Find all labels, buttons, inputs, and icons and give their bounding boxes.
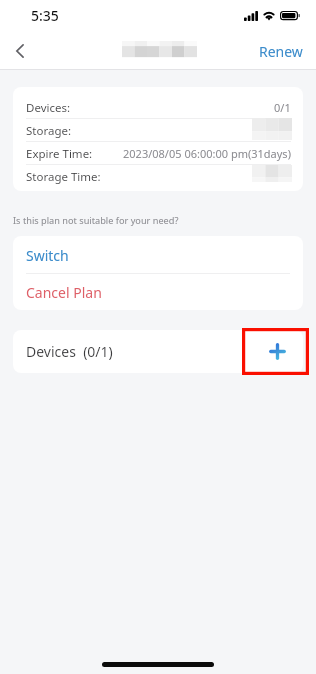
button[interactable]: Cancel Plan (13, 274, 303, 310)
staticText: Storage: (26, 123, 72, 139)
staticText: 5:35 (31, 6, 59, 25)
staticText: Storage Time: (26, 169, 101, 185)
button[interactable]: Back (0, 32, 40, 69)
staticText: Devices: (26, 100, 71, 116)
staticText: Expire Time: (26, 146, 93, 162)
staticText: 2023/08/05 06:00:00 pm(31days) (123, 146, 291, 161)
staticText: Switch (26, 246, 69, 265)
staticText: Cancel Plan (26, 283, 102, 302)
staticText: 0/1 (274, 100, 291, 115)
staticText: Renew (259, 42, 303, 61)
button[interactable]: Renew (0, 32, 316, 69)
button[interactable]: Switch (13, 236, 303, 274)
button[interactable]: Add device (251, 330, 303, 373)
staticText: Devices (0/1) (26, 342, 113, 361)
staticText: Is this plan not suitable for your need? (13, 214, 179, 227)
